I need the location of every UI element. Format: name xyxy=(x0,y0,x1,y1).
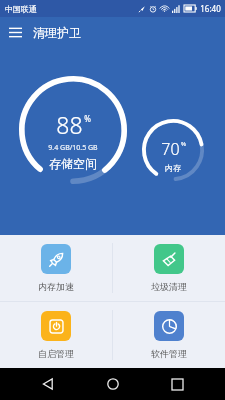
button[interactable]: Menu xyxy=(0,17,30,47)
staticText: % xyxy=(84,113,91,124)
staticText: 16:40 xyxy=(200,3,221,14)
button[interactable]: 软件管理 xyxy=(113,302,225,368)
button[interactable]: Back xyxy=(32,368,64,400)
staticText: % xyxy=(181,140,186,148)
staticText: 中国联通 xyxy=(5,4,37,14)
staticText: 内存加速 xyxy=(38,281,74,292)
button[interactable]: 自启管理 xyxy=(0,302,112,368)
staticText: 清理护卫 xyxy=(33,25,81,40)
button[interactable]: 内存加速 xyxy=(0,235,112,301)
button[interactable]: Recents xyxy=(161,368,193,400)
staticText: 存储空间 xyxy=(49,156,97,171)
staticText: 内存 xyxy=(165,163,181,173)
staticText: 软件管理 xyxy=(151,348,187,359)
button[interactable]: 内存 70% xyxy=(142,119,204,181)
staticText: 9.4 GB/10.5 GB xyxy=(48,143,98,153)
button[interactable]: 存储空间 88% xyxy=(19,76,127,184)
button[interactable]: Home xyxy=(97,368,129,400)
button[interactable]: 垃圾清理 xyxy=(113,235,225,301)
staticText: 70 xyxy=(161,138,180,160)
staticText: 垃圾清理 xyxy=(151,281,187,292)
staticText: 88 xyxy=(56,109,83,140)
staticText: 自启管理 xyxy=(38,348,74,359)
